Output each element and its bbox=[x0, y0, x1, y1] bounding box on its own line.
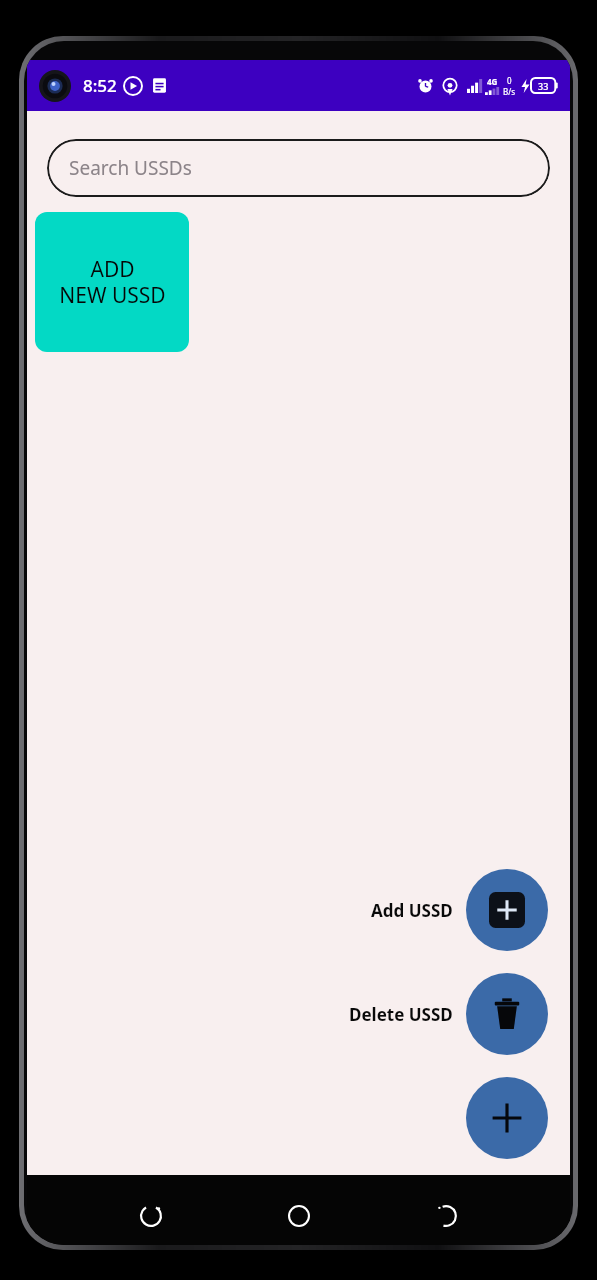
button[interactable]: Recents bbox=[128, 1193, 174, 1239]
button[interactable]: Back bbox=[423, 1193, 469, 1239]
button[interactable]: Add USSD bbox=[371, 869, 548, 951]
button[interactable]: Add bbox=[466, 1077, 548, 1159]
button[interactable]: Home bbox=[276, 1193, 322, 1239]
staticText: 8:52 bbox=[83, 74, 117, 97]
other: Add USSD bbox=[466, 869, 548, 951]
staticText: B/s bbox=[503, 86, 516, 97]
button[interactable]: Search USSDs bbox=[47, 139, 550, 197]
staticText: Search USSDs bbox=[69, 155, 192, 181]
other: Delete USSD bbox=[466, 973, 548, 1055]
staticText: ADD NEW USSD bbox=[59, 255, 166, 310]
button[interactable]: Delete USSD bbox=[349, 973, 548, 1055]
staticText: Add USSD bbox=[371, 899, 453, 922]
staticText: 33 bbox=[538, 80, 549, 92]
staticText: 4G bbox=[487, 76, 498, 87]
button[interactable]: ADD NEW USSD bbox=[35, 212, 189, 352]
staticText: Delete USSD bbox=[349, 1003, 453, 1026]
staticText: 0 bbox=[507, 75, 512, 86]
